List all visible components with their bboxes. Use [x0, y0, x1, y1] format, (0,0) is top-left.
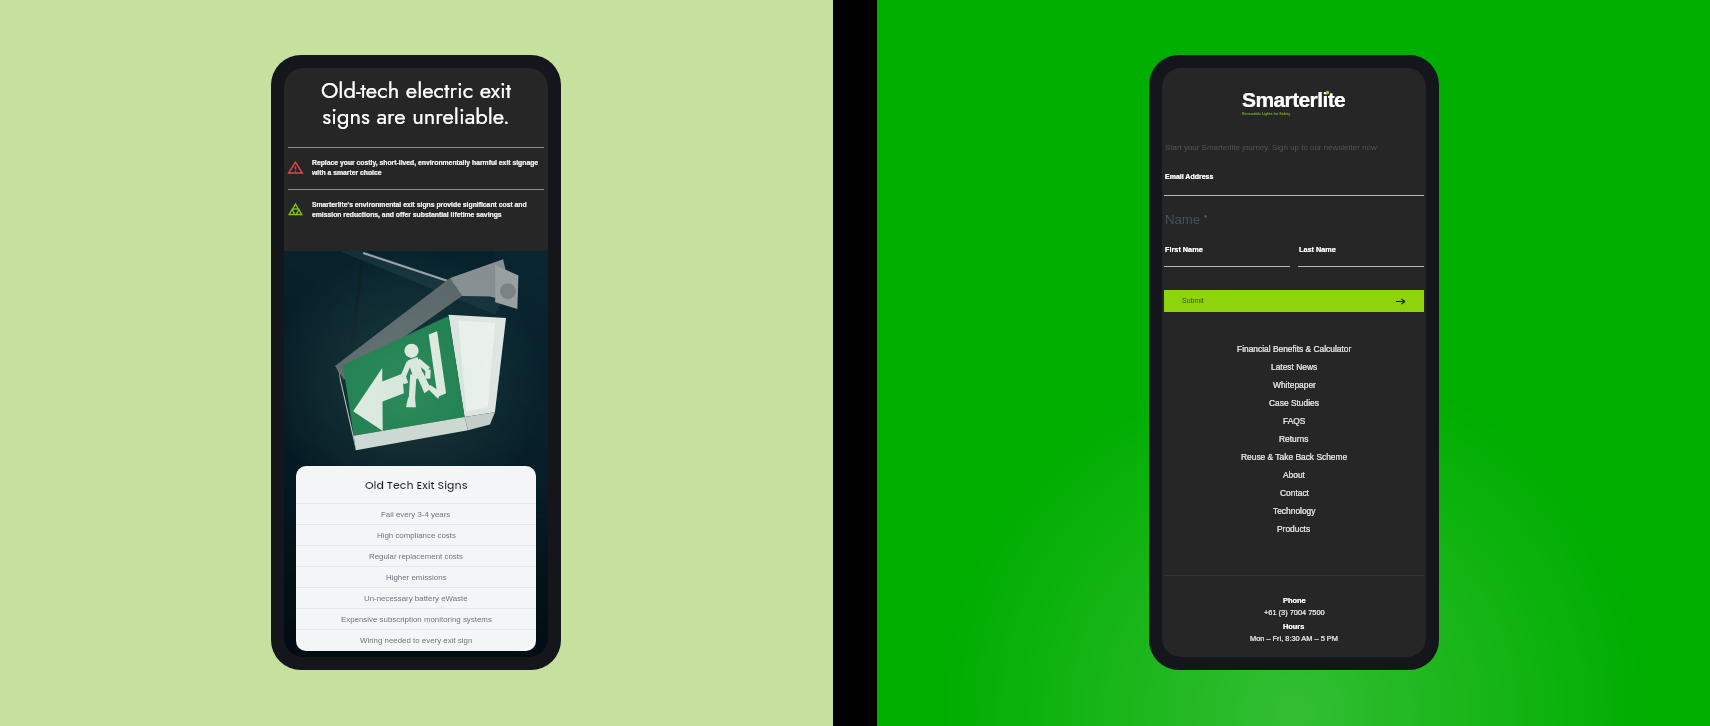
staticText: Smarterlite's environmental exit signs p… [312, 201, 544, 219]
button[interactable]: Fail every 3-4 years [296, 504, 536, 524]
staticText: Smarterlite [1242, 88, 1346, 111]
staticText: * [1204, 213, 1208, 222]
button[interactable]: Higher emissions [296, 567, 536, 587]
staticText: Renewable Lights for Safety [1242, 112, 1291, 116]
button[interactable]: Submit [1164, 290, 1424, 312]
button[interactable]: Contact [1164, 483, 1424, 501]
staticText: First Name [1165, 245, 1203, 253]
staticText: Un-necessary battery eWaste [364, 594, 468, 603]
staticText: Old Tech Exit Signs [365, 477, 468, 492]
other: Submit [1396, 297, 1405, 306]
staticText: Technology [1273, 506, 1316, 515]
staticText: Submit [1182, 297, 1204, 305]
staticText: Wiring needed to every exit sign [360, 636, 473, 645]
staticText: Returns [1279, 434, 1309, 443]
staticText: High compliance costs [377, 531, 456, 540]
staticText: Reuse & Take Back Scheme [1241, 452, 1348, 461]
staticText: Higher emissions [386, 573, 447, 582]
button[interactable]: Whitepaper [1164, 375, 1424, 393]
staticText: Name [1165, 212, 1201, 227]
button[interactable]: Case Studies [1164, 393, 1424, 411]
staticText: Regular replacement costs [369, 552, 463, 561]
staticText: Expensive subscription monitoring system… [341, 615, 492, 624]
staticText: Fail every 3-4 years [381, 510, 451, 519]
staticText: Contact [1280, 488, 1309, 497]
staticText: Replace your costly, short-lived, enviro… [312, 159, 544, 177]
staticText: +61 (3) 7004 7500 [1264, 608, 1325, 616]
button[interactable]: Expensive subscription monitoring system… [296, 609, 536, 629]
button[interactable]: Financial Benefits & Calculator [1164, 339, 1424, 357]
button[interactable]: Last Name [1298, 245, 1424, 267]
button[interactable]: Warning [288, 148, 544, 189]
other: Eco friendly [288, 202, 303, 217]
button[interactable]: Products [1164, 519, 1424, 537]
staticText: Last Name [1299, 245, 1336, 253]
staticText: Start your Smarterlite journey. Sign up … [1165, 143, 1377, 152]
button[interactable]: Email Address [1164, 173, 1424, 196]
button[interactable]: About [1164, 465, 1424, 483]
button[interactable]: High compliance costs [296, 525, 536, 545]
button[interactable]: Returns [1164, 429, 1424, 447]
staticText: Phone [1283, 596, 1306, 604]
button[interactable]: Latest News [1164, 357, 1424, 375]
button[interactable]: Regular replacement costs [296, 546, 536, 566]
staticText: Case Studies [1269, 398, 1319, 407]
staticText: FAQS [1283, 416, 1306, 425]
button[interactable]: First Name [1164, 245, 1290, 267]
button[interactable]: Technology [1164, 501, 1424, 519]
staticText: Email Address [1165, 173, 1214, 181]
staticText: Financial Benefits & Calculator [1237, 344, 1352, 353]
staticText: About [1283, 470, 1305, 479]
staticText: Whitepaper [1273, 380, 1316, 389]
staticText: Products [1277, 524, 1311, 533]
staticText: Mon – Fri, 8:30 AM – 5 PM [1250, 634, 1338, 642]
button[interactable]: Un-necessary battery eWaste [296, 588, 536, 608]
button[interactable]: Reuse & Take Back Scheme [1164, 447, 1424, 465]
other: Warning [288, 160, 303, 175]
staticText: Latest News [1271, 362, 1318, 371]
button[interactable]: FAQS [1164, 411, 1424, 429]
button[interactable]: Eco friendly [288, 190, 544, 231]
staticText: Old-tech electric exit signs are unrelia… [302, 74, 530, 132]
staticText: Hours [1283, 622, 1305, 630]
button[interactable]: Wiring needed to every exit sign [296, 630, 536, 650]
